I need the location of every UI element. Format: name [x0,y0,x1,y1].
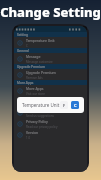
staticText: 1.0 [26,136,31,140]
staticText: C [74,103,77,108]
staticText: Privacy Policy [26,119,48,124]
staticText: C [26,44,28,48]
button[interactable]: Message [14,53,87,64]
staticText: Remove Ads [26,76,43,80]
staticText: Message customize [26,60,53,64]
button[interactable]: Upgrade Premium [14,69,87,80]
button[interactable]: Celsius selected [71,101,79,109]
staticText: More Apps [17,81,34,85]
staticText: Send us suggestions [26,114,54,118]
staticText: Upgrade Premium [17,65,46,69]
button[interactable]: Feedback [14,107,87,118]
staticText: More Apps [26,86,44,91]
button[interactable]: Version [14,129,87,140]
button[interactable]: Fahrenheit [60,101,68,109]
button[interactable]: Rate Us [14,96,87,107]
staticText: Upgrade Premium [26,70,56,75]
staticText: Temperature Unit [26,38,55,43]
button[interactable]: Temperature Unit [14,37,87,48]
staticText: Message [26,54,41,59]
staticText: Rate on Google Play [26,103,54,107]
staticText: F [63,103,66,108]
staticText: Change Setting [0,3,101,21]
staticText: General [17,49,29,53]
button[interactable]: Privacy Policy [14,118,87,129]
staticText: Setting [17,33,28,37]
staticText: Temperature Unit [22,102,60,108]
button[interactable]: More Apps [14,85,87,96]
staticText: Read our privacy policy [26,125,58,129]
staticText: Visit our store [26,92,45,96]
staticText: Version [26,130,39,135]
